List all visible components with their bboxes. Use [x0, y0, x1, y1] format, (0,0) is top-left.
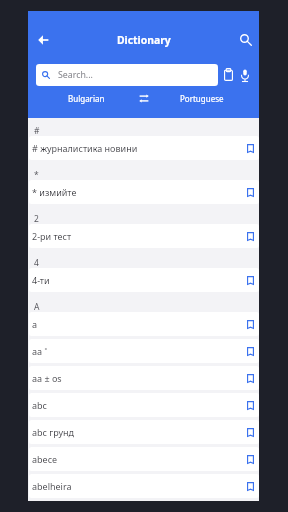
- staticText: aa ± os: [32, 372, 241, 384]
- button[interactable]: Paste from clipboard: [219, 65, 237, 83]
- button[interactable]: Search...: [36, 64, 218, 86]
- button[interactable]: Bookmark: [241, 423, 259, 441]
- staticText: Portuguese: [180, 93, 224, 104]
- button[interactable]: Bulgarian: [46, 88, 126, 108]
- button[interactable]: abc грунд: [29, 420, 259, 444]
- staticText: aa ˚: [32, 345, 241, 357]
- button[interactable]: Bookmark: [241, 139, 259, 157]
- button[interactable]: Bookmark: [241, 227, 259, 245]
- staticText: A: [34, 301, 40, 313]
- button[interactable]: Back: [30, 27, 56, 53]
- button[interactable]: abc: [29, 393, 259, 417]
- staticText: #: [34, 125, 40, 137]
- button[interactable]: 4-ти: [29, 268, 259, 292]
- button[interactable]: a: [29, 312, 259, 336]
- button[interactable]: Bookmark: [241, 183, 259, 201]
- button[interactable]: aa ˚: [29, 339, 259, 363]
- button[interactable]: abelheira: [29, 474, 259, 498]
- staticText: Dictionary: [117, 33, 171, 47]
- button[interactable]: * измийте: [29, 180, 259, 204]
- staticText: Search...: [58, 69, 93, 81]
- button[interactable]: Bookmark: [241, 369, 259, 387]
- button[interactable]: Swap languages: [134, 88, 154, 108]
- staticText: 2: [34, 213, 39, 225]
- staticText: 4: [34, 257, 39, 269]
- staticText: *: [34, 169, 39, 181]
- button[interactable]: Portuguese: [162, 88, 242, 108]
- staticText: abelheira: [32, 480, 241, 492]
- button[interactable]: 2-ри тест: [29, 224, 259, 248]
- button[interactable]: Bookmark: [241, 342, 259, 360]
- staticText: # журналистика новини: [32, 142, 241, 154]
- button[interactable]: # журналистика новини: [29, 136, 259, 160]
- staticText: abc: [32, 399, 241, 411]
- button[interactable]: Bookmark: [241, 450, 259, 468]
- button[interactable]: Bookmark: [241, 315, 259, 333]
- staticText: abc грунд: [32, 426, 241, 438]
- button[interactable]: abece: [29, 447, 259, 471]
- staticText: * измийте: [32, 186, 241, 198]
- button[interactable]: Bookmark: [241, 396, 259, 414]
- staticText: 2-ри тест: [32, 230, 241, 242]
- button[interactable]: Bookmark: [241, 477, 259, 495]
- staticText: 4-ти: [32, 274, 241, 286]
- button[interactable]: aa ± os: [29, 366, 259, 390]
- staticText: Bulgarian: [68, 93, 105, 104]
- staticText: abece: [32, 453, 241, 465]
- button[interactable]: Voice search: [236, 66, 254, 84]
- staticText: a: [32, 318, 241, 330]
- button[interactable]: Search: [233, 27, 259, 53]
- button[interactable]: Bookmark: [241, 271, 259, 289]
